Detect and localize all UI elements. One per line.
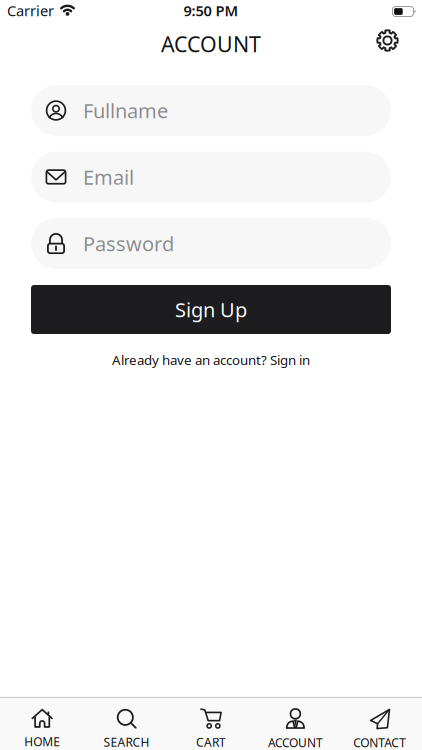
staticText: Already have an account? Sign in — [112, 351, 310, 369]
button[interactable]: Fullname — [31, 85, 391, 136]
staticText: SEARCH — [104, 734, 150, 750]
button[interactable]: CART — [169, 708, 253, 750]
staticText: CART — [196, 734, 226, 750]
staticText: CONTACT — [353, 735, 406, 750]
button[interactable]: ACCOUNT — [253, 708, 338, 750]
button[interactable]: SEARCH — [84, 708, 169, 750]
staticText: Password — [83, 230, 174, 257]
staticText: 9:50 PM — [183, 1, 238, 20]
staticText: ACCOUNT — [161, 30, 261, 58]
staticText: ACCOUNT — [268, 735, 323, 750]
button[interactable]: Sign Up — [31, 285, 391, 334]
staticText: HOME — [24, 734, 60, 749]
button[interactable]: Password — [31, 218, 391, 269]
staticText: Email — [83, 164, 134, 190]
staticText: Carrier — [7, 1, 54, 20]
button[interactable]: HOME — [0, 709, 84, 749]
button[interactable]: CONTACT — [338, 708, 422, 750]
button[interactable]: Settings — [376, 29, 422, 52]
button[interactable]: Already have an account? Sign in — [112, 351, 310, 369]
staticText: Fullname — [83, 97, 168, 124]
staticText: Sign Up — [175, 296, 247, 323]
button[interactable]: Email — [31, 151, 391, 202]
